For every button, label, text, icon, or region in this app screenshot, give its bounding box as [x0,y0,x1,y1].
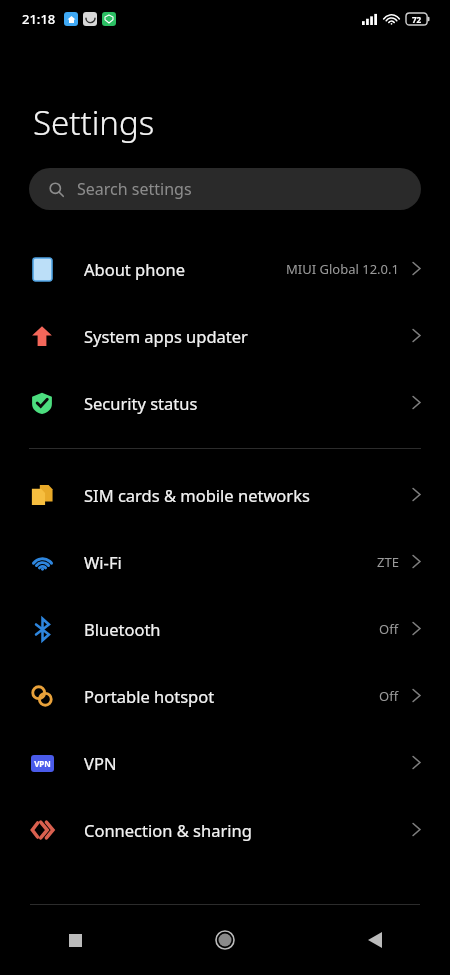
button[interactable]: Wi-Fi [0,528,450,595]
staticText: Wi-Fi [84,551,122,573]
button[interactable]: Portable hotspot [0,662,450,729]
staticText: About phone [84,258,185,280]
button[interactable]: Back [300,905,450,975]
staticText: ZTE [377,553,399,571]
button[interactable]: Home [150,905,300,975]
staticText: Bluetooth [84,618,161,640]
button[interactable]: Connection & sharing [0,796,450,863]
button[interactable]: Search settings [29,168,421,210]
staticText: Search settings [77,178,192,200]
staticText: Security status [84,392,198,414]
staticText: VPN [34,758,51,769]
staticText: System apps updater [84,325,248,347]
staticText: Off [379,620,399,638]
staticText: MIUI Global 12.0.1 [286,260,399,278]
staticText: Off [379,687,399,705]
staticText: SIM cards & mobile networks [84,484,310,506]
button[interactable]: Recents [0,905,150,975]
button[interactable]: About phone [0,235,450,302]
staticText: 72 [412,14,422,25]
button[interactable]: SIM cards & mobile networks [0,461,450,528]
staticText: 21:18 [22,10,56,28]
staticText: VPN [84,752,117,774]
button[interactable]: VPN [0,729,450,796]
staticText: Portable hotspot [84,685,215,707]
staticText: Connection & sharing [84,819,252,841]
button[interactable]: System apps updater [0,302,450,369]
button[interactable]: Bluetooth [0,595,450,662]
button[interactable]: Security status [0,369,450,436]
staticText: Settings [33,100,155,145]
